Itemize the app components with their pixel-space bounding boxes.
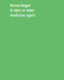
staticText: Never forget [10, 3, 30, 7]
staticText: medicine again [10, 13, 35, 17]
staticText: to take or order [10, 8, 34, 12]
